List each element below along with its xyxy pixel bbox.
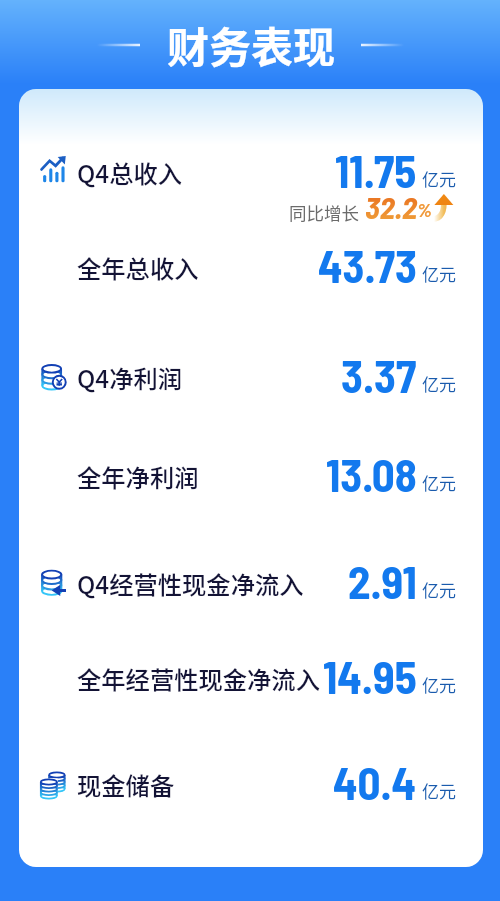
staticText: 亿元	[422, 261, 456, 286]
staticText: 43.73	[318, 238, 417, 292]
button[interactable]: Q4净利润	[19, 348, 483, 404]
staticText: 2.91	[348, 554, 417, 608]
staticText: 13.08	[326, 447, 417, 501]
staticText: 全年净利润	[77, 459, 199, 494]
staticText: 现金储备	[77, 767, 175, 802]
staticText: 亿元	[422, 166, 456, 191]
other: Q4总收入	[40, 156, 66, 184]
staticText: Q4经营性现金净流入	[77, 566, 304, 601]
staticText: %	[417, 198, 432, 221]
other: Q4经营性现金净流入	[40, 567, 66, 595]
staticText: 32.2	[365, 188, 418, 225]
staticText: 亿元	[422, 470, 456, 495]
staticText: 全年总收入	[77, 250, 199, 285]
other: Q4净利润	[40, 361, 66, 389]
staticText: Q4总收入	[77, 155, 183, 190]
staticText: 14.95	[323, 649, 417, 703]
staticText: 亿元	[422, 371, 456, 396]
staticText: Q4净利润	[77, 360, 183, 395]
button[interactable]: 全年净利润	[19, 447, 483, 503]
staticText: 40.4	[333, 755, 417, 809]
staticText: 全年经营性现金净流入	[77, 661, 320, 696]
staticText: 亿元	[422, 672, 456, 697]
staticText: 同比增长	[289, 200, 359, 225]
staticText: 亿元	[422, 577, 456, 602]
staticText: 11.75	[335, 143, 417, 197]
staticText: 3.37	[341, 348, 417, 402]
button[interactable]: 现金储备	[19, 755, 483, 811]
button[interactable]: 全年总收入	[19, 238, 483, 294]
button[interactable]: 全年经营性现金净流入	[19, 649, 483, 705]
button[interactable]: Q4总收入	[19, 143, 483, 221]
button[interactable]: Q4经营性现金净流入	[19, 554, 483, 610]
staticText: 财务表现	[167, 14, 336, 75]
other: 现金储备	[40, 768, 66, 796]
staticText: 亿元	[422, 778, 456, 803]
